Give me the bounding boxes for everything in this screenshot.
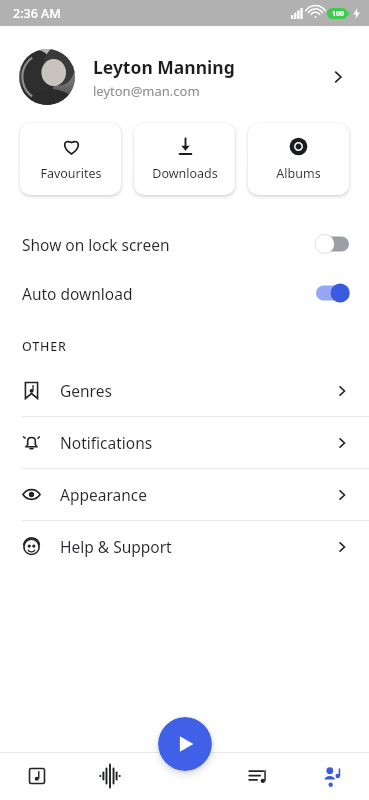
staticText: Albums xyxy=(276,165,321,182)
staticText: Appearance xyxy=(60,484,335,505)
button[interactable]: Appearance xyxy=(0,469,369,520)
staticText: Genres xyxy=(60,380,335,401)
staticText: Auto download xyxy=(22,283,305,304)
staticText: Notifications xyxy=(60,432,335,453)
staticText: 100 xyxy=(332,9,345,19)
button[interactable]: Leyton Manning xyxy=(0,45,369,109)
button[interactable]: Equalizer xyxy=(73,752,147,800)
button[interactable]: Albums xyxy=(248,123,349,195)
button[interactable]: Show on lock screen xyxy=(0,227,369,261)
button[interactable]: Help & Support xyxy=(0,521,369,572)
staticText: OTHER xyxy=(22,338,67,355)
button[interactable]: Auto download xyxy=(0,276,369,310)
button[interactable]: Genres xyxy=(0,365,369,416)
staticText: Help & Support xyxy=(60,536,335,557)
button[interactable]: Library xyxy=(0,752,73,800)
staticText: Show on lock screen xyxy=(22,234,305,255)
button[interactable]: Open profile xyxy=(323,62,353,92)
button[interactable]: Queue xyxy=(221,752,295,800)
staticText: Favourites xyxy=(40,165,102,182)
button[interactable]: Notifications xyxy=(0,417,369,468)
staticText: leyton@man.com xyxy=(93,82,200,100)
button[interactable]: Downloads xyxy=(134,123,235,195)
staticText: Downloads xyxy=(152,165,218,182)
staticText: 2:36 AM xyxy=(13,5,61,22)
button[interactable]: Favourites xyxy=(20,123,121,195)
button[interactable]: Play xyxy=(158,717,212,771)
button[interactable]: Artists xyxy=(295,752,369,800)
staticText: Leyton Manning xyxy=(93,55,235,79)
